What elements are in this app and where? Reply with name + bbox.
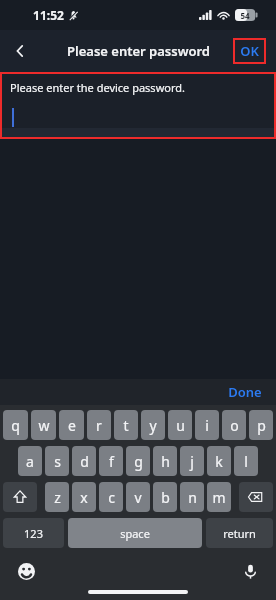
staticText: Please enter password (67, 42, 210, 60)
button[interactable]: w (31, 410, 56, 440)
button[interactable]: f (99, 446, 123, 476)
button[interactable]: space (68, 518, 202, 548)
button[interactable]: b (153, 482, 177, 512)
staticText: m (212, 488, 226, 507)
staticText: w (38, 416, 50, 435)
button[interactable]: return (206, 518, 273, 548)
staticText: v (134, 488, 142, 507)
button[interactable]: Please enter the device password. (2, 74, 274, 137)
button[interactable]: a (18, 446, 42, 476)
button[interactable]: Back (0, 31, 40, 71)
staticText: p (257, 416, 266, 435)
button[interactable]: n (180, 482, 204, 512)
staticText: y (149, 416, 157, 435)
button[interactable]: k (207, 446, 231, 476)
button[interactable]: OK (235, 40, 264, 62)
button[interactable]: q (3, 410, 28, 440)
button[interactable]: p (249, 410, 273, 440)
button[interactable]: Done (214, 379, 276, 405)
staticText: x (80, 488, 88, 507)
button[interactable]: y (141, 410, 165, 440)
button[interactable]: r (87, 410, 111, 440)
button[interactable]: m (207, 482, 231, 512)
staticText: j (190, 452, 194, 471)
staticText: 11:52 (33, 7, 64, 23)
staticText: r (96, 416, 102, 435)
staticText: e (68, 416, 76, 435)
staticText: l (244, 452, 248, 471)
button[interactable]: Voice input (236, 557, 264, 585)
staticText: 54 (240, 10, 250, 21)
staticText: i (205, 416, 209, 435)
staticText: Please enter the device password. (10, 80, 185, 95)
staticText: n (188, 488, 197, 507)
staticText: t (123, 416, 129, 435)
button[interactable]: z (45, 482, 69, 512)
button[interactable]: o (222, 410, 246, 440)
button[interactable]: x (72, 482, 96, 512)
button[interactable]: Emoji (12, 557, 40, 585)
staticText: return (223, 526, 256, 541)
staticText: OK (240, 42, 259, 60)
button[interactable]: d (72, 446, 96, 476)
staticText: q (11, 416, 20, 435)
button[interactable]: Backspace (239, 482, 273, 512)
button[interactable]: u (168, 410, 192, 440)
staticText: d (80, 452, 89, 471)
button[interactable]: Shift (3, 482, 37, 512)
button[interactable]: t (114, 410, 138, 440)
button[interactable]: i (195, 410, 219, 440)
button[interactable]: v (126, 482, 150, 512)
staticText: b (161, 488, 170, 507)
button[interactable]: 123 (3, 518, 64, 548)
staticText: z (54, 488, 61, 507)
staticText: a (26, 452, 34, 471)
button[interactable]: e (59, 410, 84, 440)
staticText: g (134, 452, 143, 471)
button[interactable]: c (99, 482, 123, 512)
staticText: c (108, 488, 115, 507)
staticText: space (120, 526, 150, 541)
staticText: s (54, 452, 61, 471)
staticText: k (215, 452, 223, 471)
staticText: f (109, 452, 114, 471)
staticText: Done (228, 383, 262, 401)
staticText: h (161, 452, 170, 471)
staticText: u (176, 416, 185, 435)
button[interactable]: l (234, 446, 258, 476)
button[interactable]: g (126, 446, 150, 476)
staticText: 123 (24, 526, 43, 541)
button[interactable]: s (45, 446, 69, 476)
staticText: o (230, 416, 239, 435)
button[interactable]: j (180, 446, 204, 476)
button[interactable]: h (153, 446, 177, 476)
